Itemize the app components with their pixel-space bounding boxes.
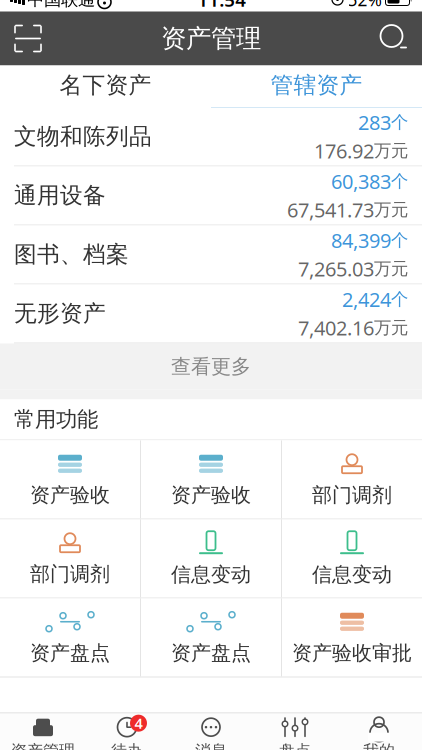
staticText: 资产管理 — [11, 741, 75, 750]
button[interactable]: 资产验收审批 — [282, 598, 422, 676]
button[interactable]: 资产盘点 — [141, 598, 281, 676]
staticText: 84,399 — [331, 227, 391, 253]
staticText: 常用功能 — [14, 406, 98, 433]
staticText: 盘点 — [279, 741, 311, 750]
staticText: 个 — [391, 171, 408, 192]
staticText: 管辖资产 — [270, 71, 362, 99]
staticText: 信息变动 — [171, 562, 251, 587]
staticText: 待办 — [111, 741, 143, 750]
staticText: 资产验收 — [171, 483, 251, 507]
staticText: 万元 — [374, 317, 408, 338]
staticText: 部门调剂 — [312, 483, 392, 507]
button[interactable]: 部门调剂 — [0, 519, 140, 597]
staticText: 67,541.73 — [287, 196, 374, 223]
staticText: 7,402.16 — [298, 314, 374, 341]
staticText: 个 — [391, 230, 408, 251]
staticText: 消息 — [195, 741, 227, 750]
staticText: 万元 — [374, 199, 408, 220]
staticText: 我的 — [363, 741, 395, 750]
staticText: 图书、档案 — [14, 241, 129, 268]
staticText: 中国联通 — [27, 0, 95, 10]
staticText: 资产验收审批 — [292, 641, 412, 665]
staticText: 信息变动 — [312, 562, 392, 587]
button[interactable]: 信息变动 — [282, 519, 422, 597]
button[interactable]: 查看更多 — [0, 343, 422, 389]
button[interactable]: 资产验收 — [141, 440, 281, 518]
staticText: 万元 — [374, 140, 408, 161]
button[interactable]: 通用设备 — [0, 166, 422, 225]
button[interactable]: 资产管理 — [1, 713, 85, 750]
staticText: 176.92 — [314, 137, 374, 164]
staticText: 资产盘点 — [171, 641, 251, 665]
button[interactable]: 搜索 — [366, 11, 422, 65]
button[interactable]: 资产盘点 — [0, 598, 140, 676]
staticText: 查看更多 — [171, 354, 251, 379]
staticText: 4 — [134, 713, 142, 733]
staticText: 资产盘点 — [30, 641, 110, 665]
staticText: 2,424 — [342, 286, 391, 312]
button[interactable]: 信息变动 — [141, 519, 281, 597]
staticText: 52% — [347, 0, 381, 11]
button[interactable]: 资产验收 — [0, 440, 140, 518]
staticText: 无形资产 — [14, 300, 106, 327]
staticText: 文物和陈列品 — [14, 123, 152, 150]
button[interactable]: 名下资产 — [0, 65, 211, 107]
staticText: 万元 — [374, 258, 408, 279]
button[interactable]: 部门调剂 — [282, 440, 422, 518]
button[interactable]: 管辖资产 — [211, 65, 422, 107]
staticText: 个 — [391, 112, 408, 133]
staticText: 资产管理 — [161, 23, 261, 54]
button[interactable]: 无形资产 — [0, 284, 422, 343]
button[interactable]: 我的 — [337, 713, 421, 750]
staticText: 283 — [358, 109, 391, 135]
staticText: 部门调剂 — [30, 562, 110, 586]
staticText: 资产验收 — [30, 483, 110, 507]
button[interactable]: 图书、档案 — [0, 225, 422, 284]
staticText: 11:54 — [197, 0, 246, 12]
button[interactable]: 文物和陈列品 — [0, 107, 422, 166]
button[interactable]: 消息 — [169, 713, 253, 750]
staticText: 通用设备 — [14, 182, 106, 209]
staticText: 名下资产 — [59, 71, 151, 99]
button[interactable]: 4 — [85, 713, 169, 750]
staticText: 7,265.03 — [298, 255, 374, 282]
staticText: 60,383 — [331, 168, 391, 194]
staticText: 个 — [391, 289, 408, 310]
button[interactable]: 扫码 — [0, 11, 56, 65]
button[interactable]: 盘点 — [253, 713, 337, 750]
